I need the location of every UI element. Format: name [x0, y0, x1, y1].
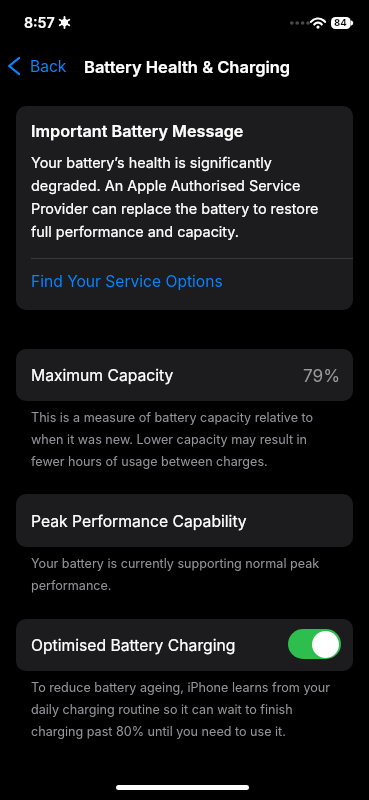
button[interactable]: Find Your Service Options [16, 259, 353, 310]
staticText: Your battery is currently supporting nor… [31, 550, 339, 594]
button[interactable]: Optimised Battery Charging [16, 619, 353, 671]
staticText: Optimised Battery Charging [31, 635, 236, 655]
staticText: 79% [303, 365, 341, 386]
button[interactable]: Maximum Capacity [16, 349, 353, 401]
button[interactable]: Back [2, 50, 75, 82]
staticText: Maximum Capacity [31, 365, 174, 385]
staticText: Your battery’s health is significantly d… [31, 150, 323, 242]
staticText: This is a measure of battery capacity re… [31, 404, 339, 470]
staticText: 84 [334, 17, 347, 29]
staticText: Battery Health & Charging [84, 56, 291, 77]
button[interactable]: Optimised Battery Charging toggle [288, 629, 341, 659]
staticText: 8:57 [24, 14, 55, 31]
button[interactable]: Peak Performance Capability [16, 494, 353, 547]
staticText: Back [30, 56, 67, 76]
staticText: Peak Performance Capability [31, 511, 247, 531]
other: Snowflake [59, 17, 70, 28]
staticText: To reduce battery ageing, iPhone learns … [31, 674, 339, 740]
staticText: Find Your Service Options [31, 271, 223, 291]
staticText: Important Battery Message [31, 121, 244, 141]
